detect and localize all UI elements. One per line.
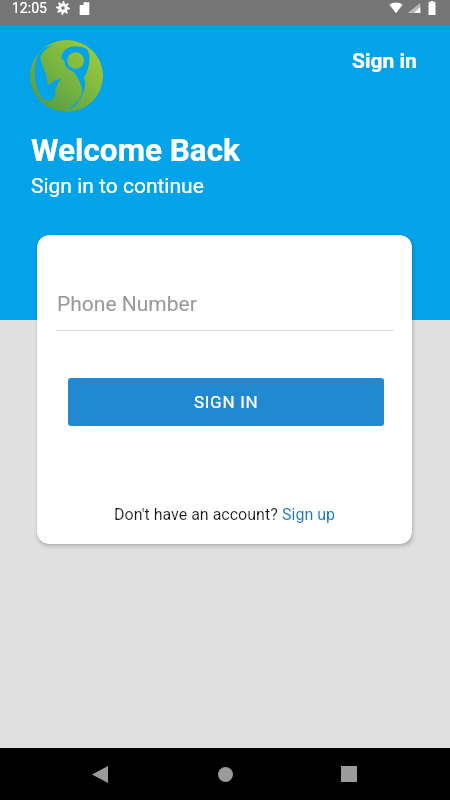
button[interactable]: Sign in: [352, 49, 417, 74]
staticText: Sign in to continue: [31, 174, 204, 199]
staticText: Welcome Back: [31, 132, 240, 169]
button[interactable]: Recent apps: [329, 754, 369, 794]
button[interactable]: Sign up: [282, 505, 335, 524]
staticText: Don't have an account?: [114, 505, 282, 524]
staticText: Phone Number: [57, 292, 197, 317]
other: App logo: [30, 40, 103, 112]
staticText: 12:05: [12, 0, 47, 16]
button[interactable]: Back: [80, 754, 120, 794]
button[interactable]: SIGN IN: [68, 378, 384, 426]
button[interactable]: Home: [205, 754, 245, 794]
staticText: SIGN IN: [194, 392, 259, 412]
